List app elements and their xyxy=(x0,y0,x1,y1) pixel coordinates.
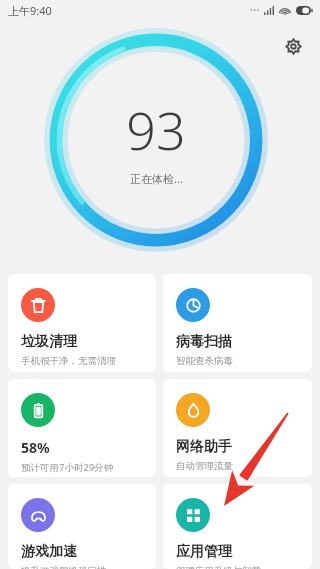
staticText: 58% xyxy=(21,438,50,457)
staticText: 93 xyxy=(126,94,186,165)
staticText: 自动管理流量 xyxy=(176,460,233,472)
staticText: 正在体检... xyxy=(130,171,183,186)
button[interactable]: 游戏加速 xyxy=(8,484,156,569)
staticText: 智能查杀病毒 xyxy=(176,355,233,367)
button[interactable]: 应用管理 xyxy=(163,484,312,569)
staticText: 手机很干净，无需清理 xyxy=(21,355,116,367)
staticText: 预计可用7小时29分钟 xyxy=(21,461,114,474)
staticText: 提升游戏网络稳定性 xyxy=(21,565,107,569)
staticText: 游戏加速 xyxy=(21,543,77,561)
button[interactable]: 垃圾清理 xyxy=(8,274,156,372)
staticText: 病毒扫描 xyxy=(176,333,232,351)
button[interactable]: 网络助手 xyxy=(163,379,312,477)
button[interactable]: 58% xyxy=(8,379,156,477)
staticText: 网络助手 xyxy=(176,438,232,456)
staticText: 垃圾清理 xyxy=(21,333,77,351)
staticText: 管理应用升级与卸载 xyxy=(176,565,262,569)
button[interactable]: Settings xyxy=(280,33,306,59)
staticText: 应用管理 xyxy=(176,543,232,561)
staticText: 上午9:40 xyxy=(8,3,52,18)
button[interactable]: 病毒扫描 xyxy=(163,274,312,372)
